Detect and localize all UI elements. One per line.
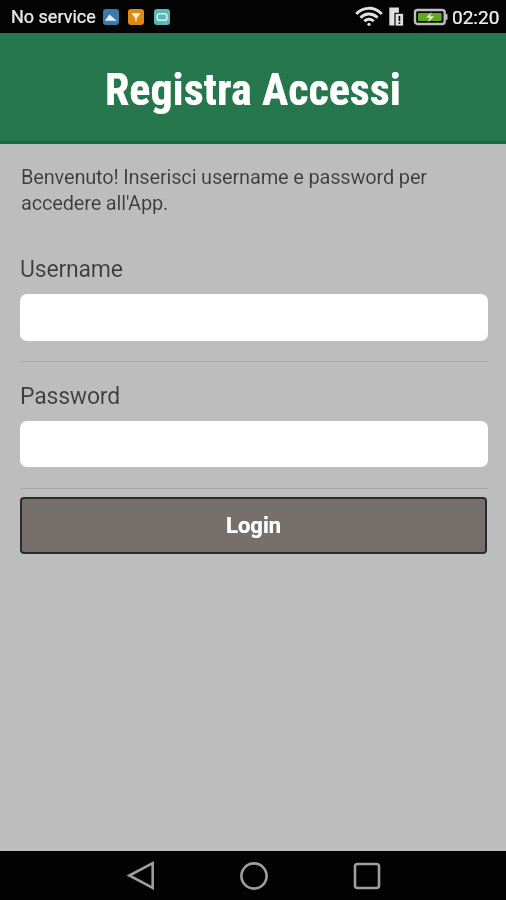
button[interactable]: Recents (310, 851, 423, 900)
staticText: Password (20, 383, 120, 410)
staticText: Login (226, 513, 282, 539)
staticText: No service (11, 6, 96, 27)
staticText: Benvenuto! Inserisci username e password… (21, 165, 448, 215)
staticText: Username (20, 256, 123, 283)
button[interactable]: Back (84, 851, 197, 900)
staticText: Registra Accessi (105, 64, 401, 116)
button[interactable]: Login (20, 497, 487, 554)
button[interactable]: Home (197, 851, 310, 900)
staticText: 02:20 (452, 6, 500, 28)
